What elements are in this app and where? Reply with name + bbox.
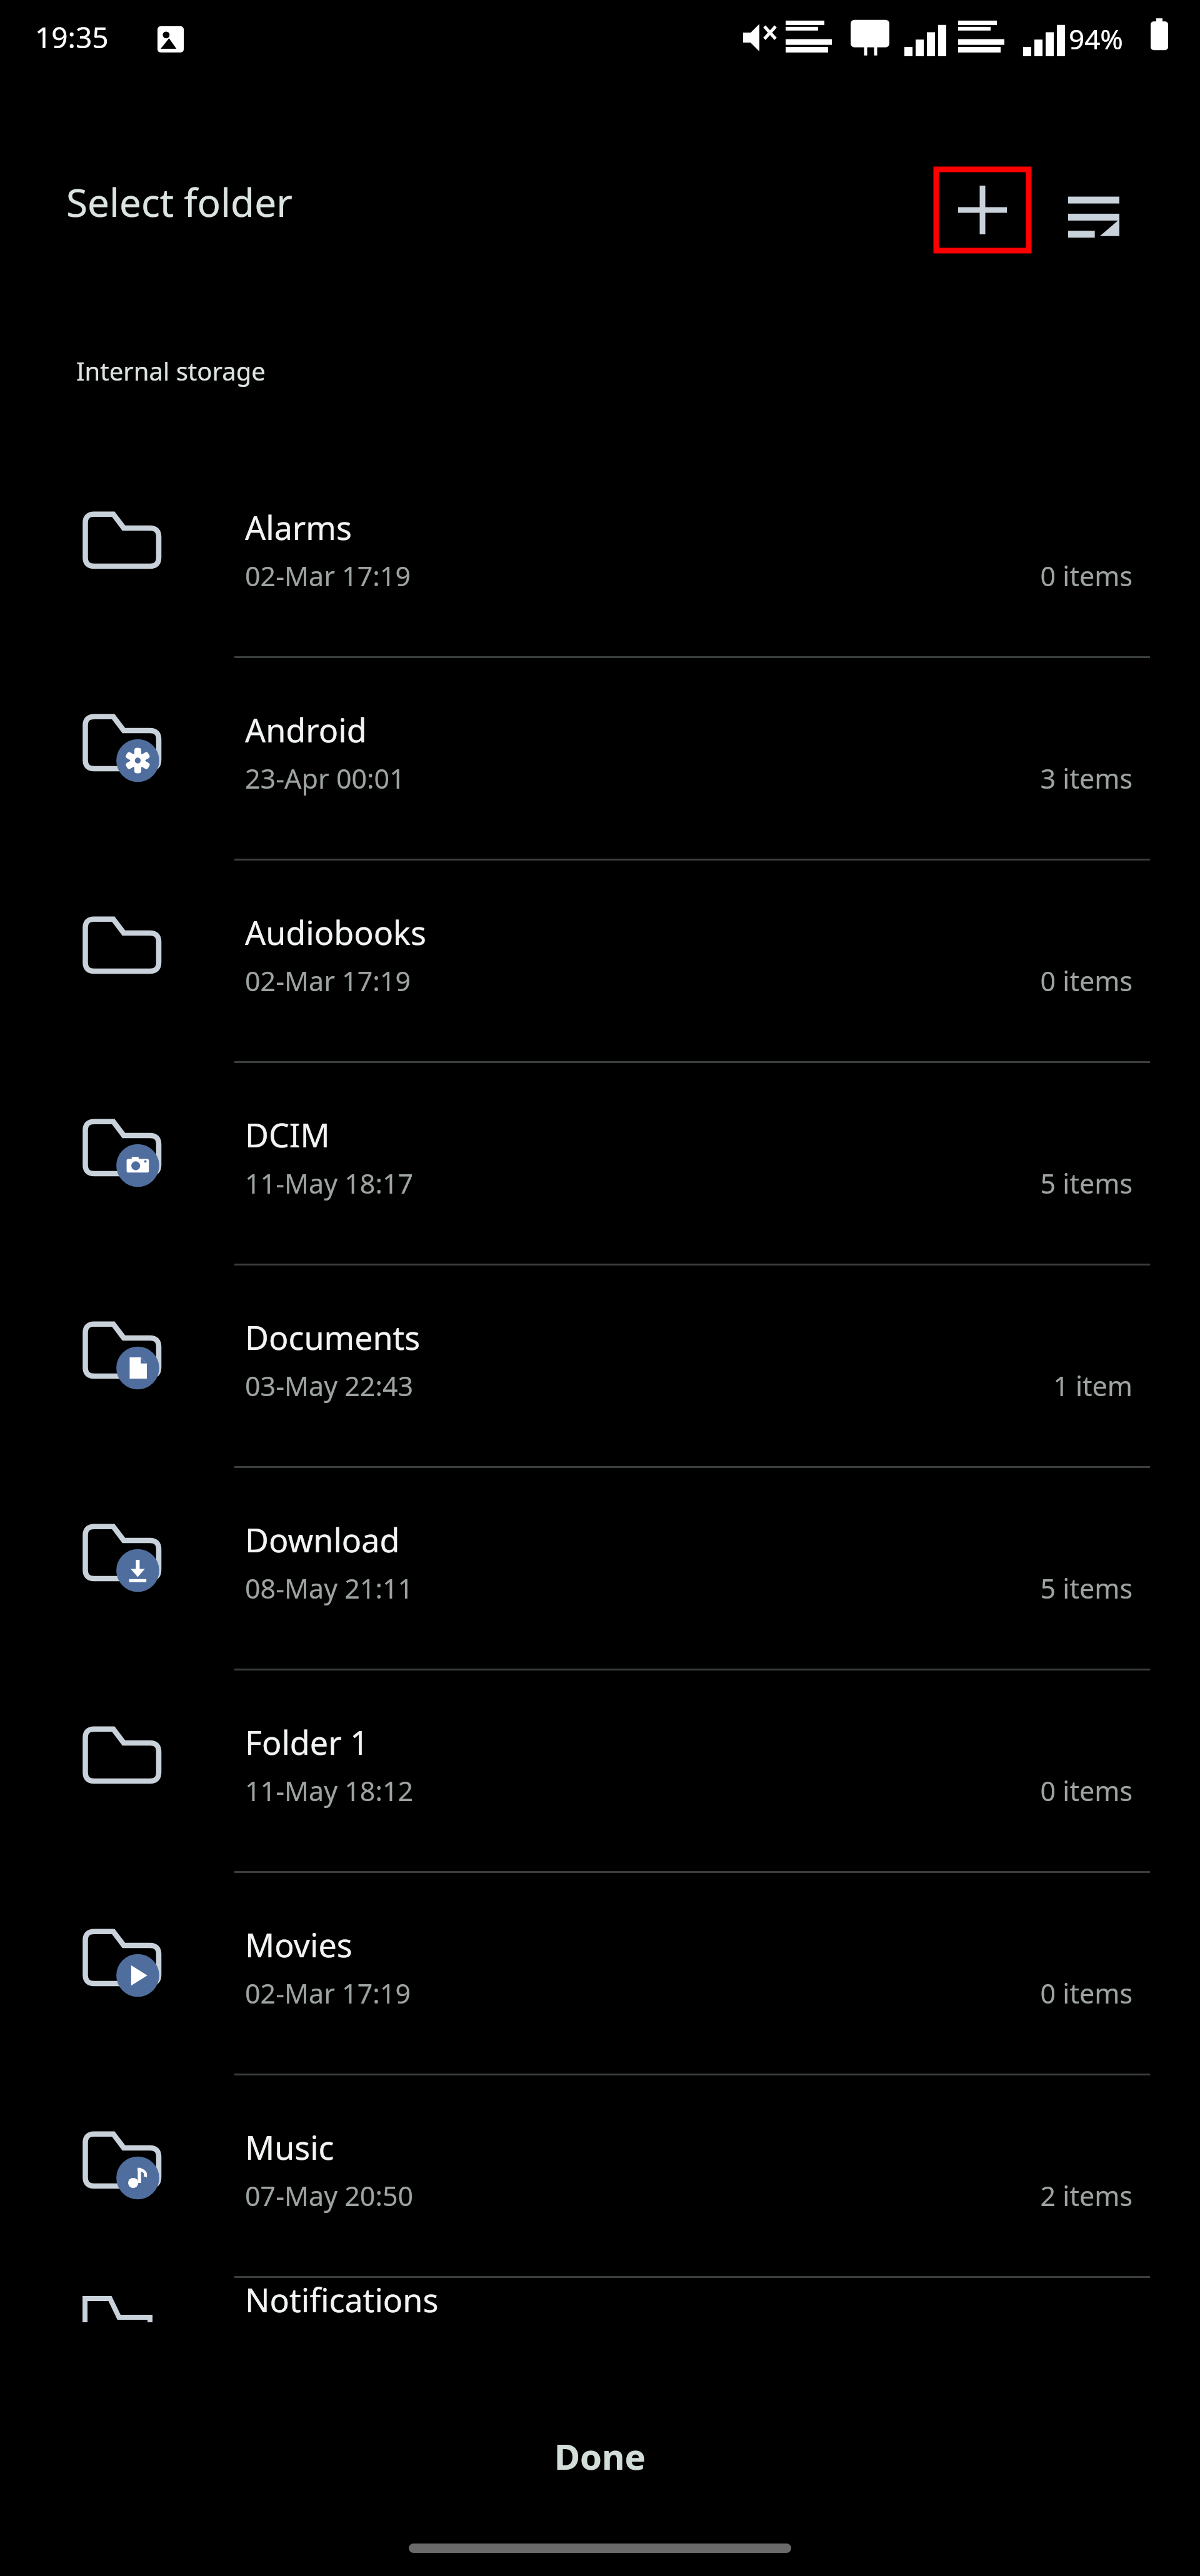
staticText: 02-Mar 17:19: [245, 1975, 411, 2012]
staticText: 02-Mar 17:19: [245, 557, 411, 594]
button[interactable]: Download: [0, 1475, 1200, 1677]
staticText: Alarms: [245, 505, 352, 549]
staticText: 23-Apr 00:01: [245, 760, 405, 797]
staticText: 2 items: [1040, 2177, 1132, 2214]
staticText: Done: [554, 2432, 646, 2480]
button[interactable]: Sort: [1057, 181, 1130, 251]
staticText: 11-May 18:17: [245, 1165, 414, 1202]
button[interactable]: DCIM: [0, 1070, 1200, 1272]
staticText: 07-May 20:50: [245, 2177, 414, 2214]
staticText: 02-Mar 17:19: [245, 962, 411, 999]
staticText: Audiobooks: [245, 910, 426, 954]
staticText: Music: [245, 2125, 334, 2169]
button[interactable]: Documents: [0, 1272, 1200, 1475]
staticText: 19:35: [35, 17, 109, 57]
button[interactable]: Movies: [0, 1880, 1200, 2082]
staticText: 0 items: [1040, 962, 1132, 999]
staticText: DCIM: [245, 1112, 330, 1157]
staticText: 1 item: [1053, 1367, 1132, 1404]
staticText: 08-May 21:11: [245, 1570, 414, 1607]
staticText: 0 items: [1040, 557, 1132, 594]
button[interactable]: Android: [0, 665, 1200, 867]
button[interactable]: Folder 1: [0, 1677, 1200, 1880]
staticText: 03-May 22:43: [245, 1367, 414, 1404]
button[interactable]: Music: [0, 2082, 1200, 2285]
staticText: 0 items: [1040, 1975, 1132, 2012]
staticText: 11-May 18:12: [245, 1772, 414, 1809]
staticText: Notifications: [245, 2277, 439, 2321]
button[interactable]: Done: [0, 2419, 1200, 2494]
staticText: Internal storage: [76, 354, 266, 387]
staticText: Android: [245, 707, 367, 752]
button[interactable]: Audiobooks: [0, 867, 1200, 1070]
staticText: 94%: [1069, 20, 1123, 57]
staticText: 5 items: [1040, 1570, 1132, 1607]
staticText: Documents: [245, 1315, 421, 1359]
staticText: Movies: [245, 1922, 352, 1967]
staticText: 0 items: [1040, 1772, 1132, 1809]
button[interactable]: Alarms: [0, 462, 1200, 665]
staticText: 5 items: [1040, 1165, 1132, 1202]
staticText: Folder 1: [245, 1720, 369, 1764]
staticText: 3 items: [1040, 760, 1132, 797]
button[interactable]: Notifications: [0, 2285, 1200, 2329]
staticText: Select folder: [66, 176, 292, 228]
staticText: Download: [245, 1517, 400, 1562]
button[interactable]: Create folder: [936, 169, 1029, 251]
